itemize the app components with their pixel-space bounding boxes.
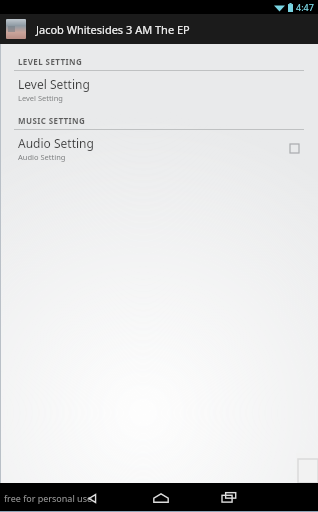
staticText: Audio Setting [18, 152, 66, 162]
staticText: Level Setting [18, 93, 63, 103]
staticText: free for personal use [4, 492, 93, 504]
button[interactable]: Audio Setting toggle [284, 138, 304, 158]
staticText: 4:47 [296, 1, 314, 13]
button[interactable]: App icon [6, 19, 26, 39]
button[interactable]: Back [78, 484, 106, 512]
staticText: Jacob Whitesides 3 AM The EP [36, 22, 190, 37]
staticText: Level Setting [18, 76, 90, 92]
button[interactable]: Home [145, 483, 177, 512]
staticText: LEVEL SETTING [18, 56, 83, 67]
button[interactable]: Level Setting [0, 71, 318, 107]
button[interactable]: Recent apps [214, 483, 244, 512]
staticText: MUSIC SETTING [18, 115, 86, 126]
staticText: Audio Setting [18, 135, 94, 151]
button[interactable]: Audio Setting [0, 130, 318, 166]
